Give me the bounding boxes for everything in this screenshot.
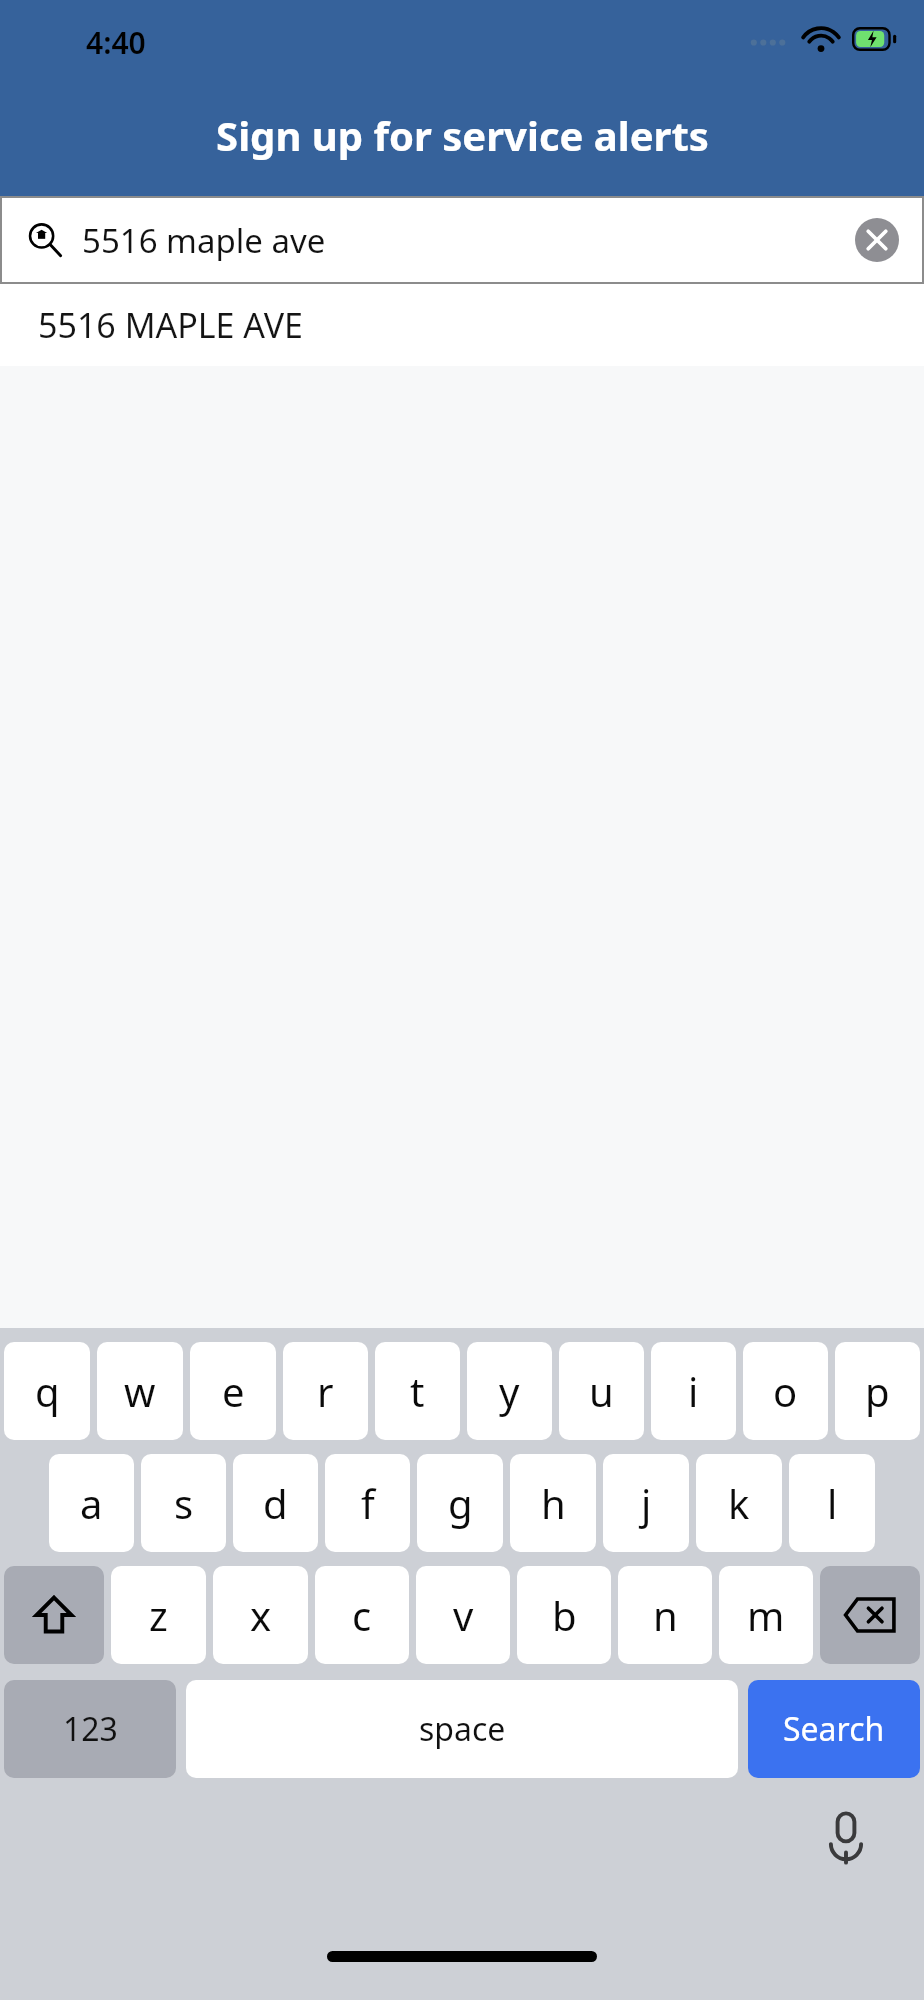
button[interactable]: c: [315, 1566, 409, 1664]
button[interactable]: 5516 maple ave: [2, 198, 922, 282]
staticText: e: [222, 1364, 245, 1418]
button[interactable]: b: [517, 1566, 611, 1664]
staticText: j: [641, 1476, 652, 1530]
staticText: z: [149, 1588, 168, 1642]
button[interactable]: f: [325, 1454, 410, 1552]
staticText: o: [773, 1364, 798, 1418]
staticText: 5516 MAPLE AVE: [38, 302, 303, 348]
button[interactable]: a: [49, 1454, 134, 1552]
button[interactable]: p: [835, 1342, 920, 1440]
button[interactable]: t: [375, 1342, 460, 1440]
button[interactable]: m: [719, 1566, 813, 1664]
staticText: r: [317, 1364, 334, 1418]
button[interactable]: n: [618, 1566, 712, 1664]
button[interactable]: Clear text: [854, 217, 900, 263]
button[interactable]: x: [213, 1566, 308, 1664]
button[interactable]: r: [283, 1342, 368, 1440]
staticText: w: [124, 1364, 156, 1418]
staticText: 5516 maple ave: [82, 218, 854, 263]
staticText: u: [589, 1364, 614, 1418]
button[interactable]: o: [743, 1342, 828, 1440]
button[interactable]: z: [111, 1566, 206, 1664]
button[interactable]: u: [559, 1342, 644, 1440]
staticText: f: [361, 1476, 375, 1530]
button[interactable]: 5516 MAPLE AVE: [0, 284, 924, 366]
button[interactable]: h: [510, 1454, 596, 1552]
button[interactable]: Search: [748, 1680, 920, 1778]
staticText: n: [653, 1588, 678, 1642]
button[interactable]: e: [190, 1342, 276, 1440]
button[interactable]: q: [4, 1342, 90, 1440]
button[interactable]: g: [417, 1454, 503, 1552]
staticText: c: [352, 1588, 372, 1642]
button[interactable]: d: [233, 1454, 318, 1552]
button[interactable]: 123: [4, 1680, 176, 1778]
staticText: l: [827, 1476, 838, 1530]
staticText: a: [80, 1476, 103, 1530]
button[interactable]: Shift: [4, 1566, 104, 1664]
staticText: q: [35, 1364, 60, 1418]
staticText: space: [419, 1707, 506, 1751]
button[interactable]: l: [789, 1454, 875, 1552]
staticText: p: [865, 1364, 890, 1418]
staticText: g: [448, 1476, 473, 1530]
button[interactable]: space: [186, 1680, 738, 1778]
staticText: v: [453, 1588, 474, 1642]
button[interactable]: Backspace: [820, 1566, 920, 1664]
button[interactable]: v: [416, 1566, 510, 1664]
staticText: t: [410, 1364, 425, 1418]
staticText: Search: [783, 1707, 885, 1751]
button[interactable]: y: [467, 1342, 552, 1440]
button[interactable]: s: [141, 1454, 226, 1552]
staticText: h: [541, 1476, 566, 1530]
staticText: d: [263, 1476, 288, 1530]
staticText: 123: [63, 1707, 118, 1751]
staticText: 4:40: [86, 22, 146, 63]
staticText: y: [499, 1364, 520, 1418]
button[interactable]: Voice input: [814, 1806, 878, 1870]
button[interactable]: i: [651, 1342, 736, 1440]
staticText: b: [552, 1588, 577, 1642]
button[interactable]: w: [97, 1342, 183, 1440]
staticText: s: [174, 1476, 194, 1530]
button[interactable]: k: [696, 1454, 782, 1552]
staticText: k: [728, 1476, 750, 1530]
staticText: x: [250, 1588, 272, 1642]
staticText: m: [747, 1588, 785, 1642]
staticText: Sign up for service alerts: [216, 108, 709, 162]
staticText: i: [688, 1364, 699, 1418]
button[interactable]: j: [603, 1454, 689, 1552]
